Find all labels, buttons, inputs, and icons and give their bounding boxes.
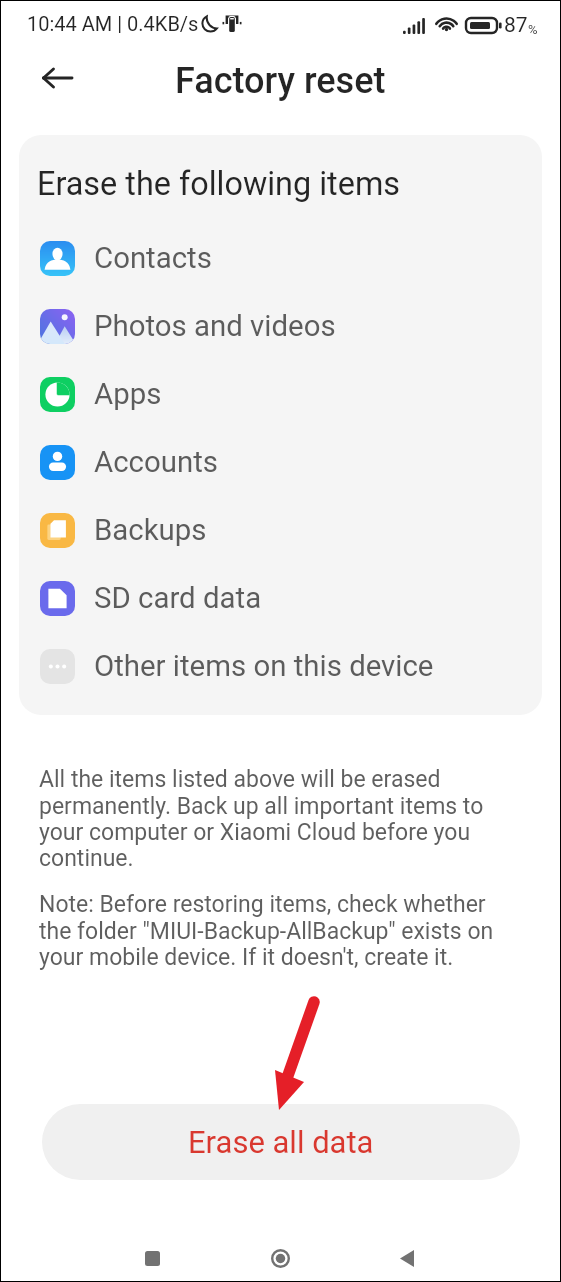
staticText: All the items listed above will be erase… xyxy=(39,766,509,872)
staticText: 87 xyxy=(504,13,528,38)
staticText: Erase all data xyxy=(188,1124,374,1160)
button[interactable]: Recent apps xyxy=(128,1234,176,1282)
staticText: Accounts xyxy=(94,445,218,479)
button[interactable]: Other items on this device xyxy=(19,632,542,700)
staticText: Contacts xyxy=(94,241,212,275)
button[interactable]: Contacts xyxy=(19,224,542,292)
staticText: Factory reset xyxy=(175,60,386,102)
button[interactable]: Erase all data xyxy=(42,1104,520,1180)
button[interactable]: Home xyxy=(256,1234,304,1282)
staticText: Backups xyxy=(94,513,207,547)
button[interactable]: Accounts xyxy=(19,428,542,496)
staticText: SD card data xyxy=(94,581,262,615)
button[interactable]: Back xyxy=(34,55,80,101)
button[interactable]: Backups xyxy=(19,496,542,564)
staticText: Photos and videos xyxy=(94,309,336,343)
staticText: 10:44 AM | 0.4KB/s xyxy=(27,12,199,35)
staticText: % xyxy=(528,22,538,37)
button[interactable]: Back xyxy=(383,1234,431,1282)
button[interactable]: Photos and videos xyxy=(19,292,542,360)
button[interactable]: SD card data xyxy=(19,564,542,632)
staticText: Erase the following items xyxy=(37,165,401,203)
staticText: Note: Before restoring items, check whet… xyxy=(39,891,509,971)
button[interactable]: Apps xyxy=(19,360,542,428)
staticText: Other items on this device xyxy=(94,649,434,683)
staticText: Apps xyxy=(94,377,162,411)
